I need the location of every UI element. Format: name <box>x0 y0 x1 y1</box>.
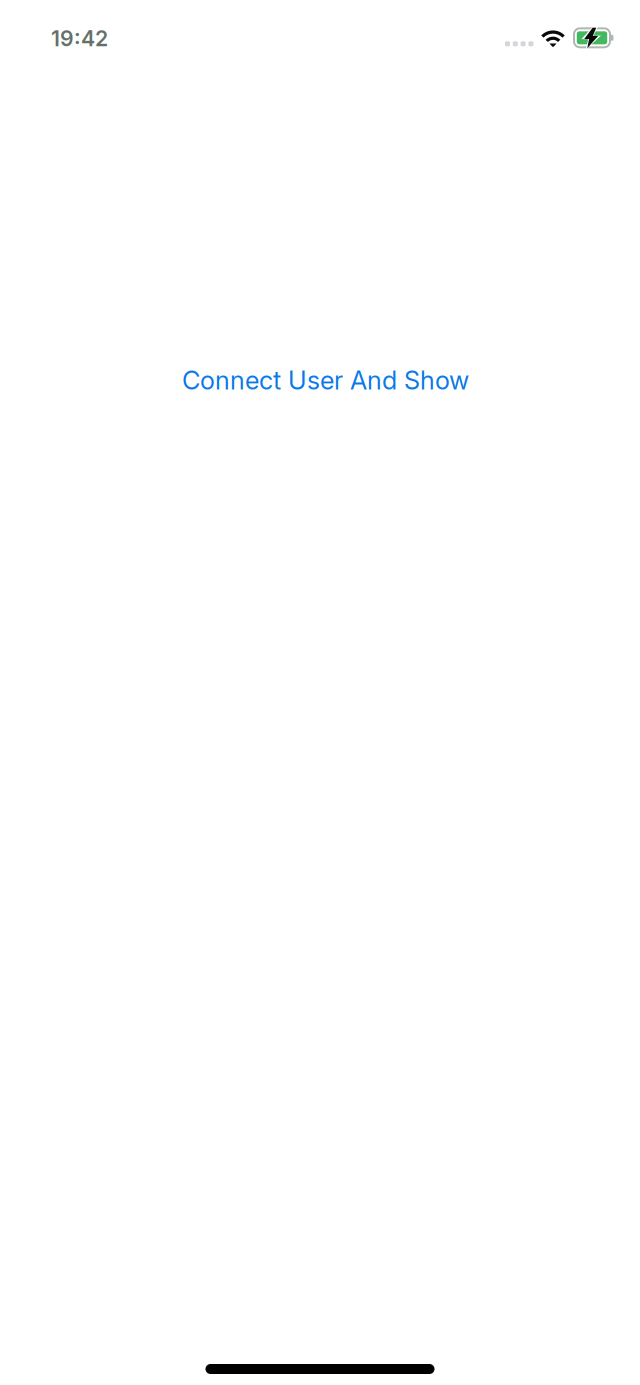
staticText: 19:42 <box>51 26 108 51</box>
staticText: Connect User And Show <box>182 365 469 396</box>
button[interactable]: Connect User And Show <box>170 359 481 402</box>
